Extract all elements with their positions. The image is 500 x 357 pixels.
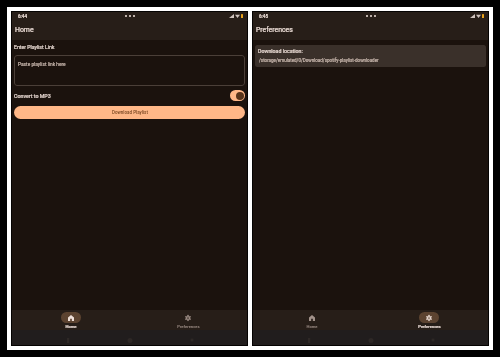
- button[interactable]: Download location:: [255, 45, 486, 67]
- button[interactable]: Preferences: [129, 310, 247, 330]
- staticText: Download Playlist: [112, 110, 148, 115]
- button[interactable]: Download Playlist: [14, 106, 245, 119]
- button[interactable]: Preferences: [370, 310, 488, 330]
- staticText: Home: [15, 26, 34, 34]
- button[interactable]: Paste playlist link here: [14, 55, 245, 86]
- staticText: Preferences: [177, 324, 200, 329]
- button[interactable]: Back: [304, 337, 314, 343]
- staticText: Enter Playlist Link: [14, 44, 55, 50]
- staticText: /storage/emulated/0/Download/spotify-pla…: [259, 58, 379, 63]
- button[interactable]: Convert to MP3 toggle: [230, 90, 245, 101]
- staticText: 6:44: [18, 14, 28, 19]
- button[interactable]: Home: [253, 310, 370, 330]
- button[interactable]: Home: [366, 337, 376, 343]
- staticText: Preferences: [256, 26, 293, 34]
- button[interactable]: Recent apps: [428, 337, 438, 343]
- staticText: Home: [306, 324, 318, 329]
- staticText: Convert to MP3: [14, 93, 51, 99]
- staticText: Home: [65, 324, 77, 329]
- staticText: 6:45: [259, 14, 269, 19]
- button[interactable]: Back: [63, 337, 73, 343]
- staticText: Paste playlist link here: [18, 62, 66, 68]
- staticText: Download location:: [258, 48, 303, 54]
- button[interactable]: Home: [12, 310, 129, 330]
- button[interactable]: Home: [125, 337, 135, 343]
- staticText: Preferences: [418, 324, 441, 329]
- button[interactable]: Recent apps: [187, 337, 197, 343]
